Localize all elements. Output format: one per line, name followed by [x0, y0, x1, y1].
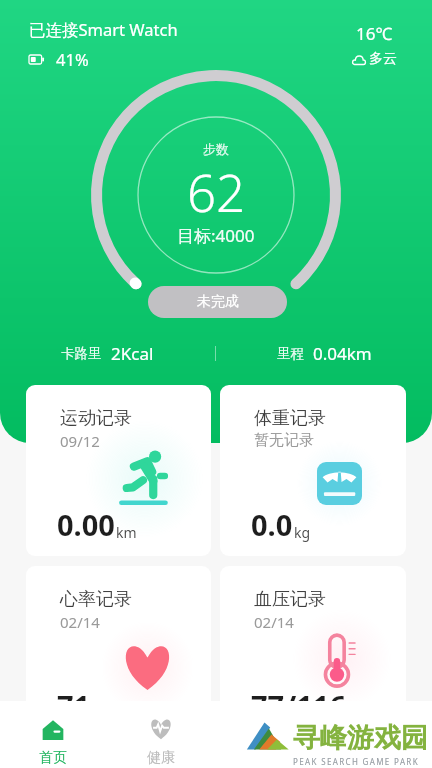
- staticText: 09/12: [60, 431, 100, 451]
- staticText: 已连接Smart Watch: [29, 18, 178, 41]
- button[interactable]: 未完成: [148, 286, 287, 318]
- staticText: 未完成: [197, 293, 239, 311]
- staticText: 41%: [56, 48, 89, 70]
- staticText: 0.00: [57, 505, 115, 544]
- staticText: 62: [187, 157, 246, 226]
- staticText: 0.04km: [313, 342, 372, 365]
- staticText: 首页: [39, 749, 67, 767]
- button[interactable]: 首页: [12, 701, 93, 768]
- staticText: PEAK SEARCH GAME PARK: [293, 756, 419, 767]
- staticText: 步数: [203, 141, 229, 157]
- button[interactable]: 血压记录: [220, 566, 406, 737]
- staticText: 多云: [369, 50, 397, 68]
- staticText: 心率记录: [60, 588, 132, 611]
- staticText: 02/14: [60, 612, 100, 632]
- staticText: km: [116, 523, 137, 542]
- button[interactable]: 心率记录: [26, 566, 211, 737]
- button[interactable]: 健康: [120, 701, 201, 768]
- staticText: 里程: [277, 345, 304, 362]
- staticText: 健康: [147, 749, 175, 767]
- button[interactable]: 体重记录: [220, 385, 406, 556]
- staticText: 16℃: [356, 22, 393, 45]
- staticText: 71: [57, 686, 91, 725]
- button[interactable]: 运动记录: [26, 385, 211, 556]
- staticText: 77/116: [251, 686, 346, 725]
- staticText: 卡路里: [61, 345, 102, 362]
- staticText: 体重记录: [254, 407, 326, 430]
- staticText: 2Kcal: [111, 342, 154, 365]
- staticText: 目标:4000: [177, 224, 255, 247]
- staticText: kg: [294, 523, 311, 542]
- staticText: 运动记录: [60, 407, 132, 430]
- staticText: 寻峰游戏园: [293, 721, 428, 755]
- staticText: 02/14: [254, 612, 294, 632]
- staticText: 血压记录: [254, 588, 326, 611]
- staticText: 暂无记录: [254, 431, 314, 450]
- staticText: 0.0: [251, 505, 293, 544]
